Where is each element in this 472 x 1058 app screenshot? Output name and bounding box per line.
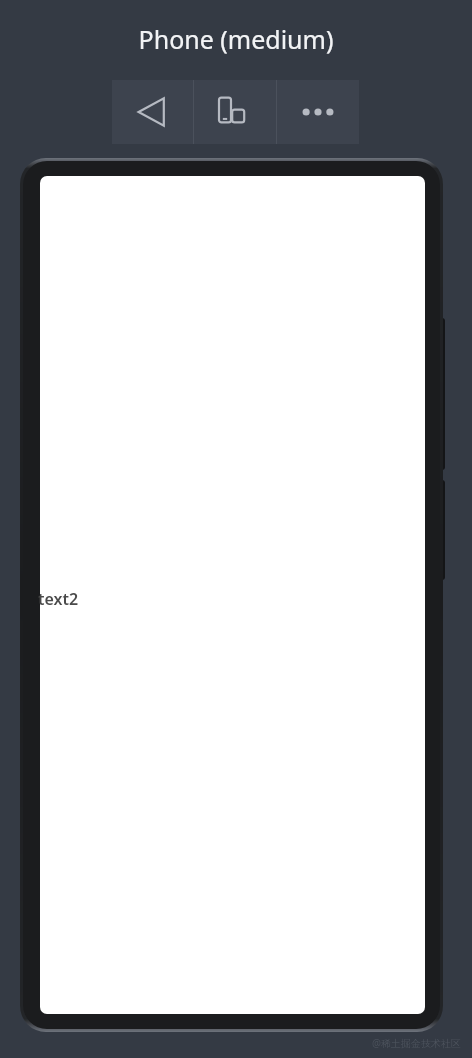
button[interactable]: More options — [277, 80, 359, 144]
button[interactable]: Back — [112, 80, 193, 144]
button[interactable]: text2 — [38, 588, 79, 610]
staticText: @稀土掘金技术社区 — [372, 1036, 461, 1050]
button[interactable]: Change orientation — [194, 80, 276, 144]
staticText: Phone (medium) — [0, 22, 472, 56]
staticText: text2 — [38, 588, 79, 610]
